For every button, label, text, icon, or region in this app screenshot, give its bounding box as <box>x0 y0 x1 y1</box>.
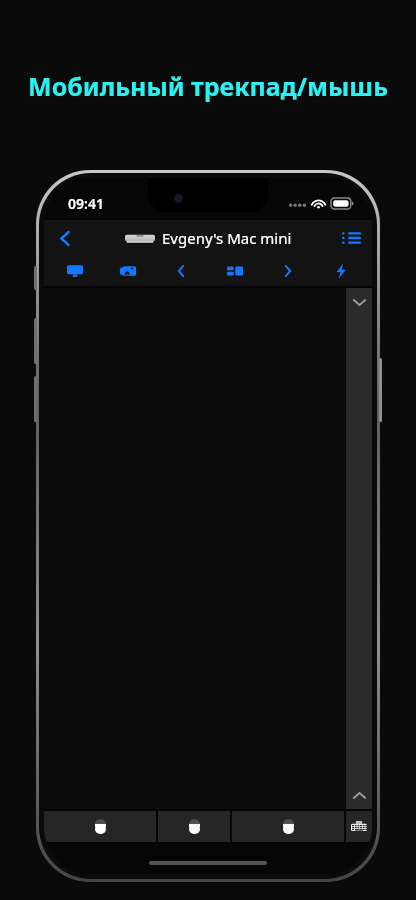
button[interactable]: Scroll down <box>346 288 372 316</box>
staticText: Мобильный трекпад/мышь <box>8 69 408 103</box>
button[interactable]: Keyboard <box>346 811 372 842</box>
staticText: 09:41 <box>68 194 104 213</box>
staticText: Evgeny's Mac mini <box>162 228 292 248</box>
button[interactable]: Back <box>44 220 86 256</box>
button[interactable]: Screenshots <box>106 256 150 286</box>
button[interactable]: Windows <box>213 256 257 286</box>
button[interactable]: List <box>330 220 372 256</box>
button[interactable]: Next <box>266 256 310 286</box>
button[interactable]: Middle click <box>158 811 230 842</box>
button[interactable]: Left click <box>44 811 156 842</box>
button[interactable]: Evgeny's Mac mini <box>125 228 292 248</box>
button[interactable]: Power <box>319 256 363 286</box>
button[interactable]: Right click <box>232 811 344 842</box>
button[interactable]: Scroll up <box>346 781 372 809</box>
button[interactable]: Previous <box>159 256 203 286</box>
button[interactable]: Display <box>53 256 97 286</box>
